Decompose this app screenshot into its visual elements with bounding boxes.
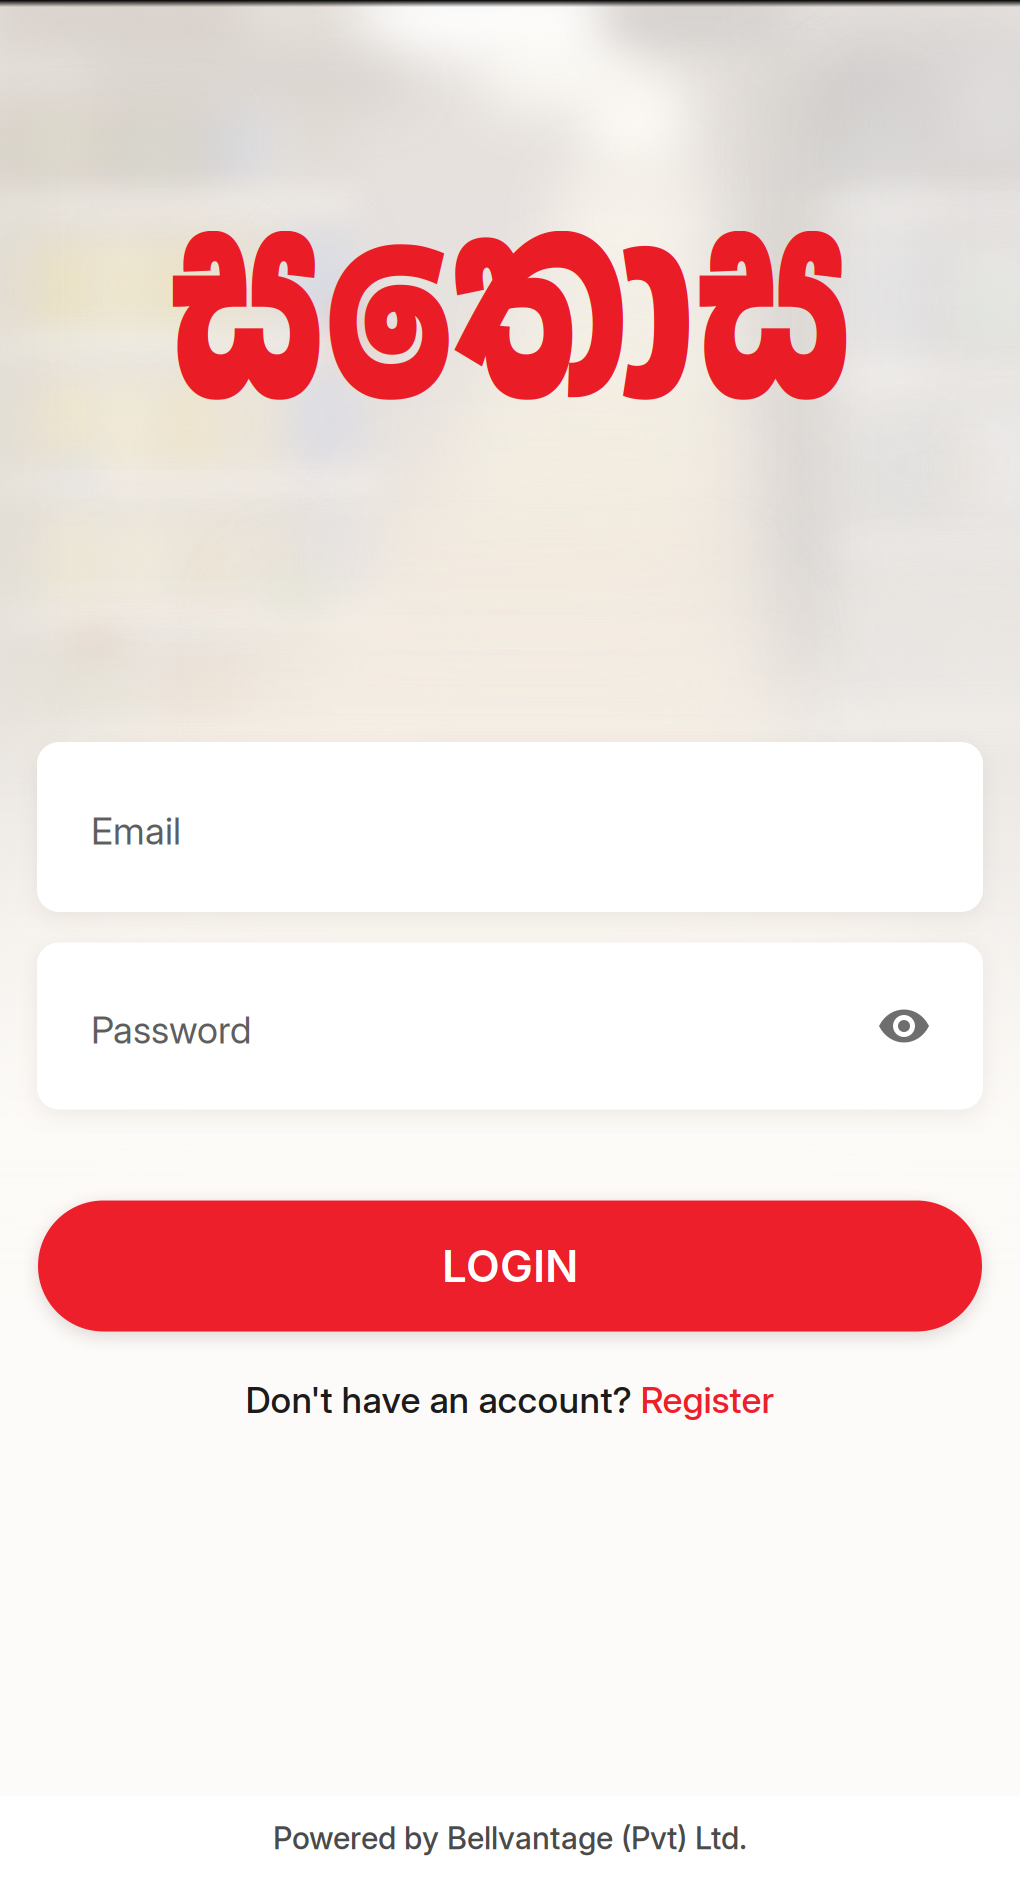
button[interactable]: Show password — [865, 991, 943, 1069]
staticText: Email — [91, 808, 181, 854]
staticText: Register — [640, 1378, 774, 1422]
staticText: LOGIN — [442, 1239, 578, 1293]
staticText: Powered by Bellvantage (Pvt) Ltd. — [273, 1819, 747, 1856]
staticText: Don't have an account? — [245, 1378, 640, 1422]
button[interactable]: Don't have an account? — [245, 1369, 774, 1431]
staticText: සතොස — [94, 127, 925, 475]
button[interactable]: LOGIN — [38, 1200, 982, 1331]
staticText: Password — [91, 1007, 251, 1053]
